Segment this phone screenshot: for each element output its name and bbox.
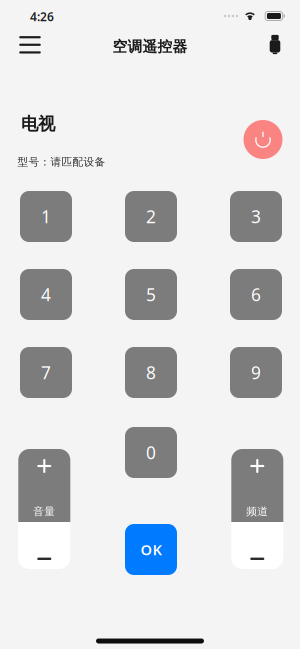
staticText: OK (140, 540, 161, 559)
staticText: 频道 (246, 505, 268, 518)
button[interactable]: 2 (125, 191, 177, 242)
staticText: 2 (146, 205, 156, 228)
button[interactable]: Devices (258, 24, 292, 64)
staticText: 电视 (21, 113, 55, 135)
button[interactable]: 0 (125, 427, 177, 478)
staticText: 9 (251, 361, 261, 384)
button[interactable]: 5 (125, 269, 177, 320)
button[interactable]: 音量 up (18, 449, 70, 522)
button[interactable]: 频道 down (231, 522, 283, 569)
staticText: 1 (41, 205, 51, 228)
button[interactable]: 3 (230, 191, 282, 242)
button[interactable]: 9 (230, 347, 282, 398)
staticText: 0 (146, 441, 156, 464)
button[interactable]: 7 (20, 347, 72, 398)
staticText: 型号：请匹配设备 (17, 155, 105, 168)
staticText: 音量 (33, 505, 55, 518)
button[interactable]: 4 (20, 269, 72, 320)
button[interactable]: 频道 up (231, 449, 283, 522)
staticText: 空调遥控器 (112, 37, 187, 55)
staticText: 4:26 (30, 8, 54, 24)
staticText: 4 (41, 283, 51, 306)
button[interactable]: 6 (230, 269, 282, 320)
button[interactable]: Menu (8, 25, 52, 65)
staticText: 8 (146, 361, 156, 384)
button[interactable]: Power (243, 120, 282, 159)
button[interactable]: OK (125, 524, 177, 575)
staticText: 7 (41, 361, 51, 384)
button[interactable]: 8 (125, 347, 177, 398)
staticText: 6 (251, 283, 261, 306)
staticText: 5 (146, 283, 156, 306)
button[interactable]: 音量 down (18, 522, 70, 569)
staticText: 3 (251, 205, 261, 228)
button[interactable]: 1 (20, 191, 72, 242)
